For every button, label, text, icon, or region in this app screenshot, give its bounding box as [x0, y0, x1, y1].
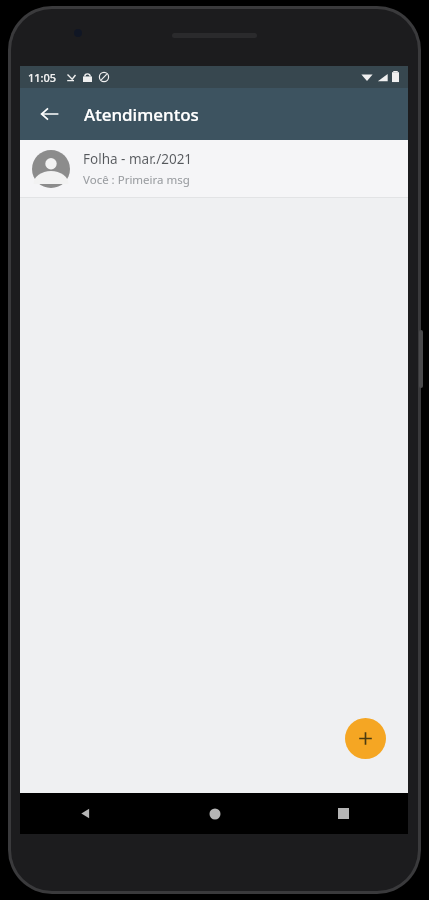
staticText: Atendimentos [84, 103, 199, 126]
button[interactable]: Recent apps [279, 793, 408, 834]
staticText: 11:05 [28, 70, 57, 85]
staticText: Folha - mar./2021 [83, 150, 193, 168]
button[interactable]: Folha - mar./2021 [20, 140, 408, 197]
button[interactable]: Home [150, 793, 279, 834]
button[interactable]: Back [30, 94, 70, 134]
staticText: Você : Primeira msg [83, 172, 190, 188]
button[interactable]: Back [20, 793, 150, 834]
button[interactable]: Add [345, 718, 386, 759]
